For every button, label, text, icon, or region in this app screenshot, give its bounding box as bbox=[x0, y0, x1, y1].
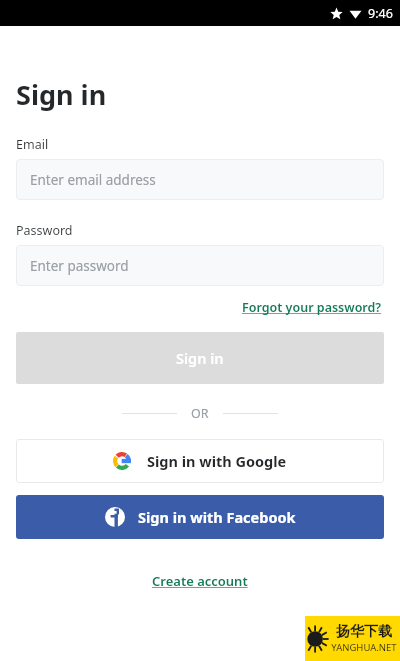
button[interactable]: Enter password bbox=[16, 245, 384, 286]
button[interactable]: Enter email address bbox=[16, 159, 384, 200]
staticText: OR bbox=[191, 405, 209, 422]
staticText: Email bbox=[16, 136, 49, 153]
other: Google bbox=[113, 452, 131, 470]
other: Facebook bbox=[105, 507, 125, 527]
staticText: Forgot your password? bbox=[242, 299, 382, 316]
staticText: YANGHUA.NET bbox=[331, 641, 397, 654]
staticText: Create account bbox=[152, 572, 248, 590]
staticText: Sign in with Facebook bbox=[138, 507, 296, 527]
staticText: Sign in bbox=[176, 348, 224, 368]
button[interactable]: Facebook bbox=[16, 495, 384, 539]
staticText: Sign in bbox=[16, 76, 107, 113]
staticText: 扬华下载 bbox=[336, 623, 392, 641]
button[interactable]: Create account bbox=[148, 568, 252, 594]
staticText: Password bbox=[16, 222, 73, 239]
staticText: Sign in with Google bbox=[147, 451, 287, 471]
button[interactable]: Forgot your password? bbox=[240, 297, 384, 318]
staticText: 9:46 bbox=[368, 5, 393, 22]
staticText: Enter password bbox=[30, 257, 129, 275]
button[interactable]: Google bbox=[16, 439, 384, 483]
staticText: Enter email address bbox=[30, 171, 156, 189]
button[interactable]: Sign in bbox=[16, 332, 384, 384]
